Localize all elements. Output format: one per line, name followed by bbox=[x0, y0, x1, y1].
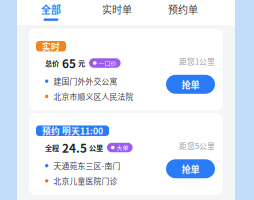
staticText: 北京儿童医院门诊 bbox=[53, 175, 117, 186]
staticText: 24.5 bbox=[62, 139, 87, 156]
staticText: 实时 bbox=[42, 40, 60, 52]
button[interactable]: 实时单 bbox=[102, 0, 132, 25]
button[interactable]: 全部 bbox=[41, 0, 61, 25]
staticText: 距您1公里 bbox=[179, 55, 215, 67]
staticText: 预约单 bbox=[168, 2, 198, 16]
staticText: 全程 bbox=[45, 142, 59, 153]
button[interactable]: 预约单 bbox=[168, 0, 198, 25]
staticText: 抢单 bbox=[181, 162, 199, 175]
staticText: 大单 bbox=[117, 143, 129, 152]
staticText: 建国门外外交公寓 bbox=[53, 76, 117, 87]
staticText: 总价 bbox=[45, 58, 59, 68]
staticText: 距您5公里 bbox=[179, 140, 215, 151]
staticText: 公里 bbox=[89, 142, 103, 153]
staticText: 预约 明天11:00 bbox=[42, 124, 103, 137]
staticText: 实时单 bbox=[102, 2, 132, 16]
staticText: 65 bbox=[62, 54, 76, 72]
staticText: 抢单 bbox=[181, 78, 199, 91]
staticText: 一口价 bbox=[99, 59, 117, 67]
staticText: 天通苑东三区-南门 bbox=[53, 160, 120, 171]
staticText: 元 bbox=[78, 58, 85, 68]
button[interactable]: 抢单 bbox=[166, 159, 215, 178]
button[interactable]: 抢单 bbox=[166, 75, 215, 94]
staticText: 北京市顺义区人民法院 bbox=[53, 91, 133, 102]
staticText: 全部 bbox=[41, 2, 61, 16]
